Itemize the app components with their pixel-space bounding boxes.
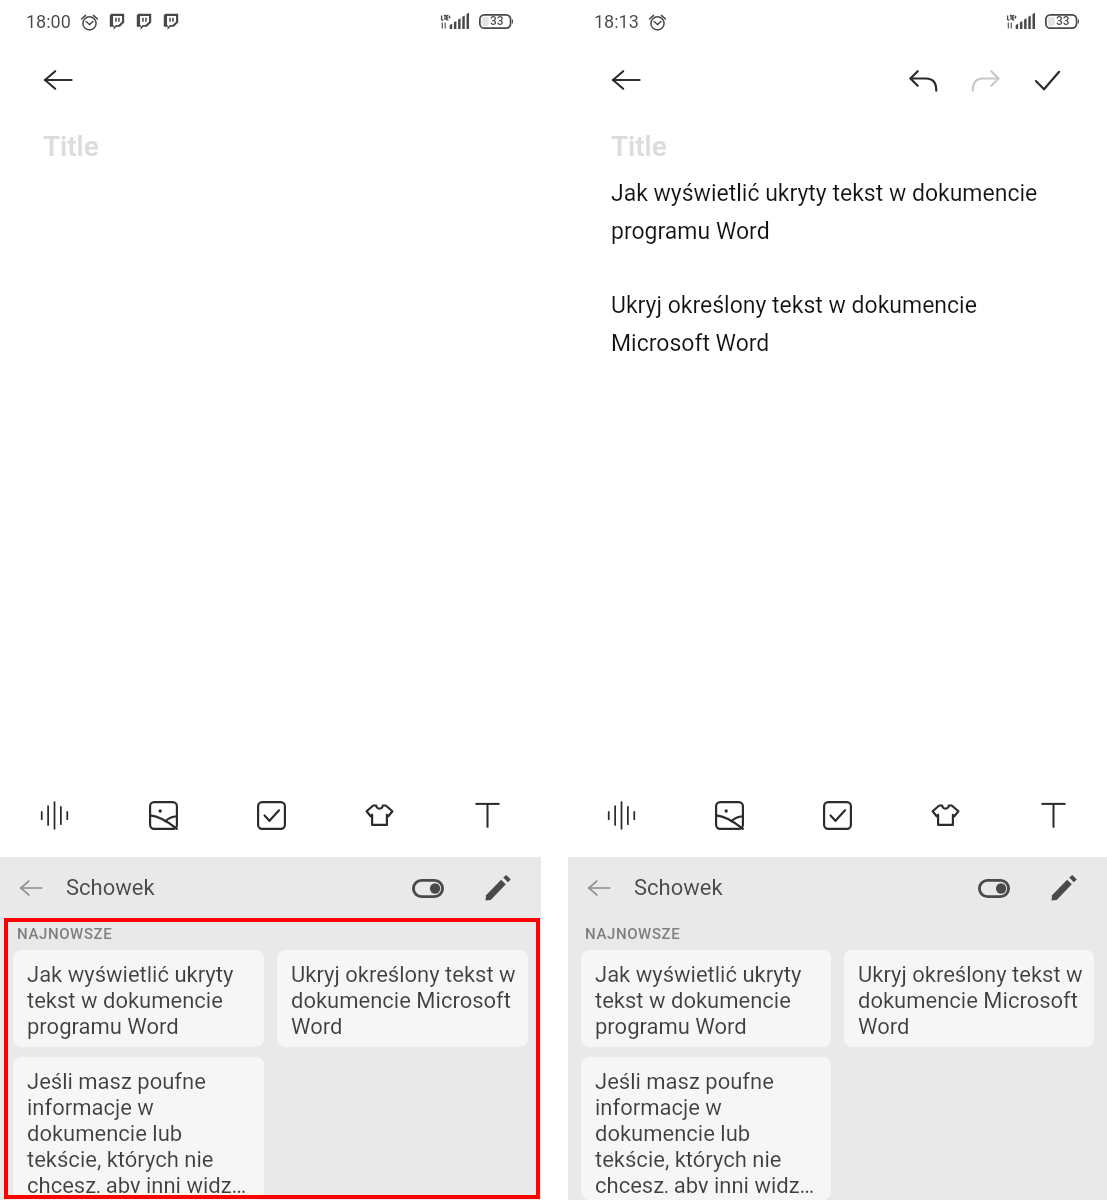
- button[interactable]: Text: [433, 787, 541, 857]
- staticText: Schowek: [634, 875, 723, 901]
- button[interactable]: Undo: [897, 54, 949, 106]
- button[interactable]: Image: [675, 787, 783, 857]
- button[interactable]: Ukryj określony tekst w dokumencie Micro…: [277, 950, 528, 1047]
- button[interactable]: Done: [1021, 54, 1073, 106]
- button[interactable]: Image: [109, 787, 217, 857]
- button[interactable]: Sticker: [891, 787, 999, 857]
- button[interactable]: Checklist: [783, 787, 891, 857]
- staticText: Jeśli masz poufne informacje w dokumenci…: [27, 1069, 257, 1193]
- button[interactable]: Edit: [475, 865, 521, 911]
- staticText: Title: [611, 130, 667, 163]
- staticText: Ukryj określony tekst w dokumencie Micro…: [611, 292, 1067, 356]
- staticText: Ukryj określony tekst w dokumencie Micro…: [291, 962, 521, 1040]
- button[interactable]: Back: [578, 867, 620, 909]
- staticText: 18:13: [594, 11, 639, 32]
- button[interactable]: Jeśli masz poufne informacje w dokumenci…: [13, 1057, 264, 1200]
- staticText: NAJNOWSZE: [585, 925, 681, 943]
- button[interactable]: Toggle clipboard: [971, 865, 1017, 911]
- button[interactable]: Ukryj określony tekst w dokumencie Micro…: [844, 950, 1094, 1047]
- staticText: NAJNOWSZE: [17, 925, 113, 943]
- staticText: 33: [490, 14, 504, 28]
- staticText: 18:00: [26, 11, 71, 32]
- staticText: Jak wyświetlić ukryty tekst w dokumencie…: [595, 962, 824, 1040]
- button[interactable]: Toggle clipboard: [405, 865, 451, 911]
- button[interactable]: Jak wyświetlić ukryty tekst w dokumencie…: [13, 950, 264, 1047]
- button[interactable]: Audio: [0, 787, 109, 857]
- button[interactable]: Audio: [568, 787, 675, 857]
- button[interactable]: Jak wyświetlić ukryty tekst w dokumencie…: [581, 950, 831, 1047]
- staticText: Jak wyświetlić ukryty tekst w dokumencie…: [27, 962, 257, 1040]
- staticText: Schowek: [66, 875, 155, 901]
- button[interactable]: Edit: [1041, 865, 1087, 911]
- staticText: Title: [43, 130, 99, 163]
- button[interactable]: Back: [32, 54, 84, 106]
- staticText: Jak wyświetlić ukryty tekst w dokumencie…: [611, 180, 1067, 244]
- staticText: Ukryj określony tekst w dokumencie Micro…: [858, 962, 1087, 1040]
- button[interactable]: Back: [10, 867, 52, 909]
- button[interactable]: Sticker: [325, 787, 433, 857]
- button[interactable]: Jeśli masz poufne informacje w dokumenci…: [581, 1057, 831, 1200]
- staticText: 33: [1056, 14, 1070, 28]
- button[interactable]: Redo: [959, 54, 1011, 106]
- button[interactable]: Text: [999, 787, 1107, 857]
- button[interactable]: Back: [600, 54, 652, 106]
- staticText: Jeśli masz poufne informacje w dokumenci…: [595, 1069, 824, 1193]
- button[interactable]: Checklist: [217, 787, 325, 857]
